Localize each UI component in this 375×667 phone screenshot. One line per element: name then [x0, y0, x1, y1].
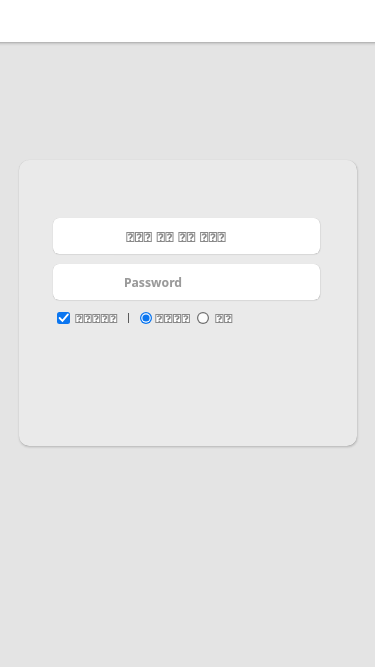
- button[interactable]: Option one: [140, 312, 152, 324]
- staticText: Password: [124, 274, 183, 291]
- button[interactable]: Option two: [197, 312, 209, 324]
- button[interactable]: Remember me: [57, 312, 70, 324]
- button[interactable]: Password field: [53, 264, 320, 300]
- button[interactable]: Username field: [53, 218, 320, 254]
